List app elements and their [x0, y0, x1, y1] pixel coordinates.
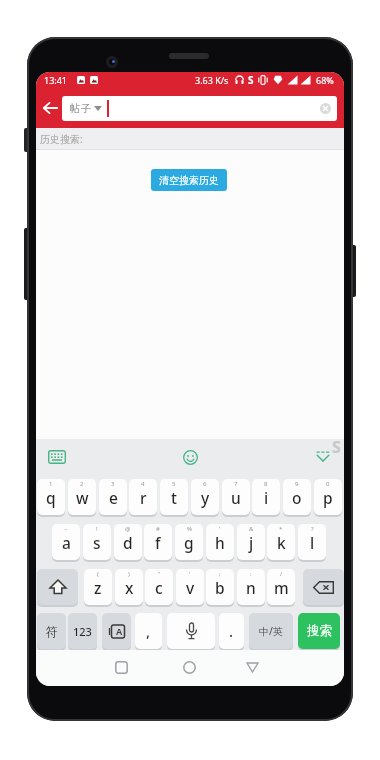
- staticText: 7: [234, 480, 238, 488]
- staticText: %: [187, 525, 192, 533]
- staticText: #: [156, 525, 160, 533]
- staticText: h: [215, 532, 225, 553]
- button[interactable]: y: [191, 479, 219, 516]
- staticText: o: [292, 487, 302, 508]
- button[interactable]: h: [206, 524, 234, 561]
- button[interactable]: [246, 662, 259, 673]
- staticText: 3: [111, 480, 115, 488]
- staticText: /: [280, 570, 283, 578]
- staticText: ~: [64, 525, 68, 533]
- button[interactable]: [320, 103, 331, 114]
- staticText: ,: [146, 621, 151, 641]
- button[interactable]: u: [222, 479, 250, 516]
- staticText: e: [109, 487, 118, 508]
- staticText: v: [186, 577, 195, 598]
- button[interactable]: A: [102, 613, 131, 650]
- button[interactable]: 清空搜索历史: [151, 169, 227, 191]
- button[interactable]: d: [114, 524, 142, 561]
- button[interactable]: n: [237, 569, 265, 606]
- staticText: w: [76, 487, 89, 508]
- button[interactable]: 符: [37, 613, 66, 650]
- staticText: y: [201, 487, 210, 508]
- button[interactable]: [303, 569, 344, 606]
- staticText: 搜索: [307, 623, 332, 639]
- staticText: d: [123, 532, 133, 553]
- button[interactable]: a: [52, 524, 80, 561]
- staticText: 中/英: [259, 624, 283, 638]
- button[interactable]: v: [176, 569, 204, 606]
- button[interactable]: 帖子: [62, 96, 337, 121]
- button[interactable]: g: [175, 524, 203, 561]
- button[interactable]: r: [129, 479, 157, 516]
- staticText: z: [94, 577, 102, 598]
- button[interactable]: t: [160, 479, 188, 516]
- staticText: 13:41: [44, 74, 68, 86]
- staticText: ;: [219, 570, 221, 578]
- button[interactable]: o: [283, 479, 311, 516]
- button[interactable]: c: [145, 569, 173, 606]
- button[interactable]: q: [37, 479, 65, 516]
- staticText: :: [250, 570, 252, 578]
- staticText: m: [274, 577, 289, 598]
- button[interactable]: b: [206, 569, 234, 606]
- staticText: (: [97, 570, 99, 578]
- button[interactable]: z: [84, 569, 112, 606]
- staticText: g: [184, 532, 194, 553]
- staticText: p: [323, 487, 333, 508]
- button[interactable]: [115, 661, 128, 674]
- staticText: j: [249, 532, 254, 553]
- button[interactable]: s: [83, 524, 111, 561]
- staticText: 5: [172, 480, 176, 488]
- button[interactable]: w: [68, 479, 96, 516]
- staticText: 8: [264, 480, 268, 488]
- staticText: 9: [295, 480, 299, 488]
- staticText: 123: [73, 624, 92, 639]
- button[interactable]: e: [99, 479, 127, 516]
- staticText: 2: [80, 480, 84, 488]
- button[interactable]: p: [314, 479, 342, 516]
- staticText: S: [248, 73, 254, 87]
- staticText: ': [219, 525, 221, 533]
- staticText: r: [140, 487, 147, 508]
- button[interactable]: [48, 450, 66, 464]
- staticText: k: [277, 532, 286, 553]
- button[interactable]: [37, 569, 78, 606]
- staticText: i: [264, 487, 269, 508]
- button[interactable]: ,: [135, 613, 162, 650]
- button[interactable]: f: [144, 524, 172, 561]
- staticText: .: [229, 621, 234, 641]
- staticText: ": [158, 570, 161, 578]
- button[interactable]: m: [267, 569, 295, 606]
- staticText: 6: [203, 480, 207, 488]
- button[interactable]: 123: [68, 613, 97, 650]
- staticText: t: [171, 487, 177, 508]
- button[interactable]: l: [298, 524, 326, 561]
- button[interactable]: k: [267, 524, 295, 561]
- staticText: 符: [46, 624, 58, 639]
- staticText: @: [125, 525, 131, 533]
- staticText: S: [332, 436, 341, 458]
- staticText: *: [279, 525, 283, 533]
- button[interactable]: [183, 661, 196, 674]
- staticText: s: [93, 532, 101, 553]
- button[interactable]: [316, 451, 330, 462]
- staticText: 4: [141, 480, 145, 488]
- button[interactable]: [43, 102, 58, 114]
- staticText: &: [249, 525, 254, 533]
- button[interactable]: [167, 613, 215, 650]
- staticText: 帖子: [70, 102, 91, 115]
- button[interactable]: j: [237, 524, 265, 561]
- staticText: u: [231, 487, 241, 508]
- button[interactable]: 中/英: [249, 613, 293, 650]
- button[interactable]: 搜索: [298, 613, 340, 650]
- staticText: c: [155, 577, 163, 598]
- button[interactable]: i: [252, 479, 280, 516]
- staticText: 3.63 K/s: [195, 74, 229, 86]
- staticText: 历史搜索:: [40, 132, 83, 146]
- staticText: 68%: [316, 74, 334, 86]
- button[interactable]: .: [219, 613, 244, 650]
- staticText: ': [189, 570, 191, 578]
- staticText: !: [96, 525, 98, 533]
- button[interactable]: x: [115, 569, 143, 606]
- button[interactable]: [183, 450, 198, 465]
